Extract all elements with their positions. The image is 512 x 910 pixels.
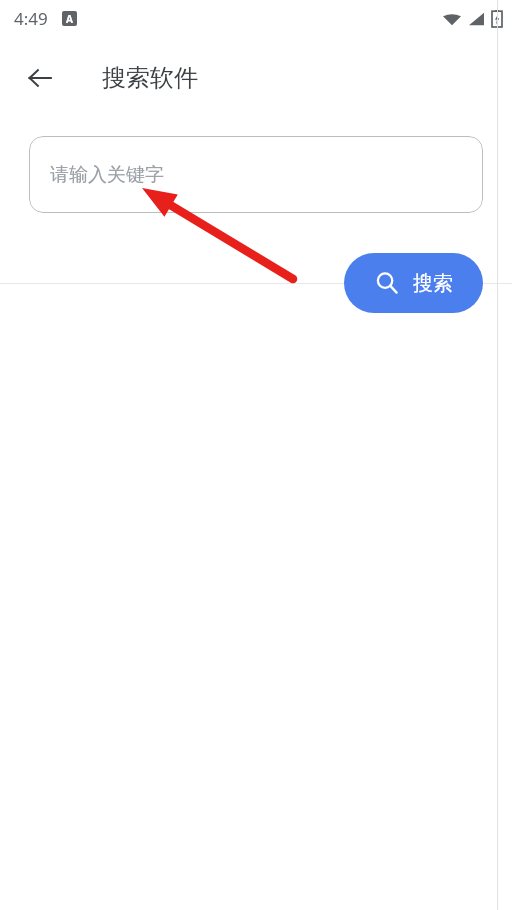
staticText: A	[66, 12, 73, 26]
staticText: 搜索软件	[102, 63, 198, 93]
staticText: 搜索	[413, 271, 453, 296]
button[interactable]: Back	[16, 54, 64, 102]
button[interactable]: 搜索	[344, 253, 483, 313]
staticText: 4:49	[14, 7, 48, 30]
staticText: 请输入关键字	[50, 163, 164, 187]
button[interactable]: 请输入关键字	[29, 136, 483, 213]
